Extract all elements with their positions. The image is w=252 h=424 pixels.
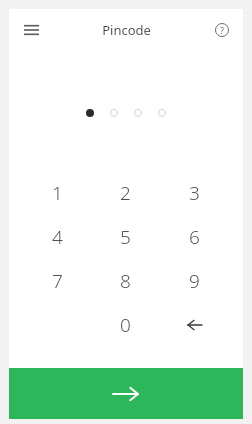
staticText: 4 [52,224,63,250]
button[interactable]: 3 [160,171,229,215]
staticText: 9 [189,268,200,294]
button[interactable]: 2 [91,171,160,215]
staticText: 0 [120,312,131,338]
staticText: 2 [120,180,131,206]
staticText: 8 [120,268,131,294]
staticText: ? [220,24,224,36]
button[interactable]: 6 [160,215,229,259]
staticText: Pincode [102,21,151,39]
button[interactable]: Continue [9,368,243,419]
button[interactable]: 5 [91,215,160,259]
staticText: 7 [52,268,63,294]
button[interactable]: 8 [91,259,160,303]
button[interactable]: Menu [14,13,48,47]
button[interactable]: 1 [23,171,91,215]
staticText: 5 [120,224,131,250]
button[interactable]: 4 [23,215,91,259]
staticText: 1 [52,180,63,206]
staticText: 6 [189,224,200,250]
staticText: 3 [189,180,200,206]
button[interactable]: Help [206,14,238,46]
button[interactable]: 9 [160,259,229,303]
button[interactable]: Backspace [160,303,229,347]
button[interactable]: 7 [23,259,91,303]
button[interactable]: 0 [91,303,160,347]
